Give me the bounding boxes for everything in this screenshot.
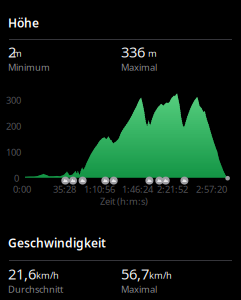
staticText: 200 — [6, 120, 21, 132]
staticText: 300 — [6, 94, 21, 106]
staticText: Maximal — [121, 61, 157, 73]
staticText: 0:00 — [13, 183, 31, 195]
staticText: km/h — [149, 269, 172, 281]
staticText: Minimum — [8, 61, 50, 73]
staticText: 2:57:20 — [196, 183, 227, 195]
staticText: 0 — [14, 172, 19, 184]
staticText: 1:10:56 — [84, 183, 115, 195]
staticText: 2 — [8, 42, 16, 61]
staticText: Zeit (h:m:s) — [100, 195, 148, 207]
staticText: Maximal — [121, 283, 157, 295]
staticText: m — [148, 47, 157, 59]
staticText: 1:46:24 — [122, 183, 153, 195]
staticText: 100 — [6, 146, 21, 158]
staticText: 2:21:52 — [157, 183, 188, 195]
staticText: 35:28 — [53, 183, 76, 195]
staticText: Höhe — [8, 15, 39, 31]
staticText: 56,7 — [121, 264, 149, 283]
staticText: Durchschnitt — [8, 283, 63, 295]
staticText: 21,6 — [8, 264, 36, 283]
staticText: Geschwindigkeit — [8, 235, 106, 251]
staticText: m — [13, 47, 22, 59]
staticText: 336 — [121, 42, 145, 61]
staticText: km/h — [36, 269, 59, 281]
